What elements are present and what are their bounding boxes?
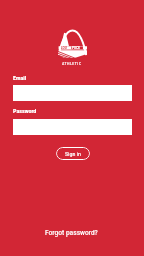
staticText: PUCE [72,46,80,50]
staticText: Forgot password? [45,228,98,237]
staticText: LOU [61,46,67,50]
staticText: Password [13,107,37,114]
staticText: Email [13,74,27,81]
staticText: ATHLETIC [62,61,82,66]
button[interactable]: Sign in [56,147,90,160]
button[interactable]: Forgot password? [45,228,98,237]
staticText: Sign in [65,150,82,157]
